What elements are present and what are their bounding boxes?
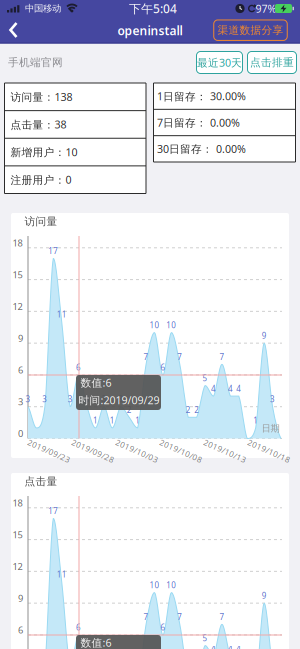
staticText: 1日留存： 30.00% (157, 89, 246, 103)
staticText: 4 (236, 383, 241, 394)
staticText: 9 (18, 332, 23, 344)
staticText: 7 (144, 611, 149, 622)
staticText: 数值:6 (80, 375, 111, 390)
button[interactable]: 渠道数据分享 (213, 19, 288, 41)
staticText: 0 (18, 427, 23, 440)
staticText: 9 (18, 592, 23, 604)
staticText: 10 (149, 320, 159, 330)
staticText: 3 (25, 394, 30, 404)
staticText: 6 (76, 622, 81, 633)
staticText: 7 (144, 351, 149, 362)
staticText: 2019/10/08 (158, 446, 204, 456)
staticText: 3 (270, 394, 275, 404)
staticText: 15 (12, 528, 22, 541)
staticText: 7 (219, 351, 224, 362)
staticText: 访问量：138 (10, 90, 72, 104)
staticText: 6 (160, 362, 165, 373)
staticText: 30日留存： 0.00% (157, 142, 246, 156)
button[interactable]: 最近30天 (196, 51, 243, 74)
staticText: 4 (228, 643, 233, 649)
staticText: openinstall (117, 22, 182, 38)
staticText: 新增用户：10 (10, 145, 77, 159)
staticText: 12 (12, 560, 22, 573)
staticText: 3 (101, 394, 106, 404)
staticText: 最近30天 (197, 55, 242, 70)
staticText: 6 (18, 624, 23, 636)
staticText: 2019/10/18 (246, 446, 292, 456)
staticText: 2019/10/13 (202, 446, 248, 456)
staticText: 中国移动 (25, 3, 61, 14)
staticText: 1 (135, 415, 140, 426)
staticText: 12 (12, 300, 22, 313)
staticText: 1 (253, 415, 258, 426)
staticText: 17 (48, 246, 58, 256)
staticText: 6 (160, 622, 165, 633)
button[interactable]: 点击排重 (247, 51, 297, 74)
staticText: 5 (203, 373, 208, 383)
staticText: 1 (110, 415, 115, 426)
staticText: 日期 (261, 423, 279, 434)
staticText: 3 (68, 394, 73, 404)
staticText: 7 (177, 611, 182, 622)
staticText: 3 (84, 394, 89, 404)
staticText: 97% (255, 1, 276, 16)
staticText: 2019/10/03 (114, 446, 160, 456)
staticText: 4 (211, 383, 216, 394)
staticText: 1 (93, 415, 98, 426)
staticText: 2 (186, 404, 191, 415)
staticText: 7 (219, 611, 224, 622)
staticText: 15 (12, 268, 22, 281)
staticText: 6 (18, 364, 23, 376)
staticText: 下午5:04 (129, 0, 177, 16)
staticText: 18 (12, 237, 22, 249)
staticText: 2019/09/28 (70, 446, 116, 456)
staticText: 5 (203, 633, 208, 643)
staticText: 点击量：38 (10, 117, 66, 131)
staticText: 7 (177, 351, 182, 362)
staticText: 4 (211, 643, 216, 649)
staticText: 点击排重 (250, 56, 294, 69)
staticText: 6 (76, 362, 81, 373)
staticText: 10 (166, 320, 176, 330)
staticText: 2 (127, 404, 132, 415)
staticText: 2019/09/23 (26, 446, 72, 456)
staticText: 4 (236, 643, 241, 649)
button[interactable]: 返回 (9, 22, 19, 38)
staticText: 访问量 (24, 215, 57, 228)
staticText: 10 (149, 580, 159, 590)
staticText: 2 (194, 404, 199, 415)
staticText: 18 (12, 497, 22, 509)
staticText: 点击量 (24, 475, 57, 488)
staticText: 3 (18, 395, 23, 408)
staticText: 9 (262, 330, 267, 341)
staticText: 11 (57, 309, 67, 320)
staticText: 渠道数据分享 (217, 24, 283, 37)
staticText: 17 (48, 506, 58, 516)
staticText: 4 (228, 383, 233, 394)
staticText: 11 (57, 569, 67, 580)
staticText: 3 (118, 394, 123, 404)
staticText: 10 (166, 580, 176, 590)
staticText: 时间:2019/09/29 (78, 393, 159, 407)
staticText: 3 (42, 394, 47, 404)
staticText: 手机端官网 (8, 56, 63, 69)
staticText: 注册用户：0 (10, 173, 71, 187)
staticText: 7日留存： 0.00% (157, 115, 240, 130)
staticText: 9 (262, 590, 267, 601)
staticText: 数值:6 (80, 635, 111, 649)
